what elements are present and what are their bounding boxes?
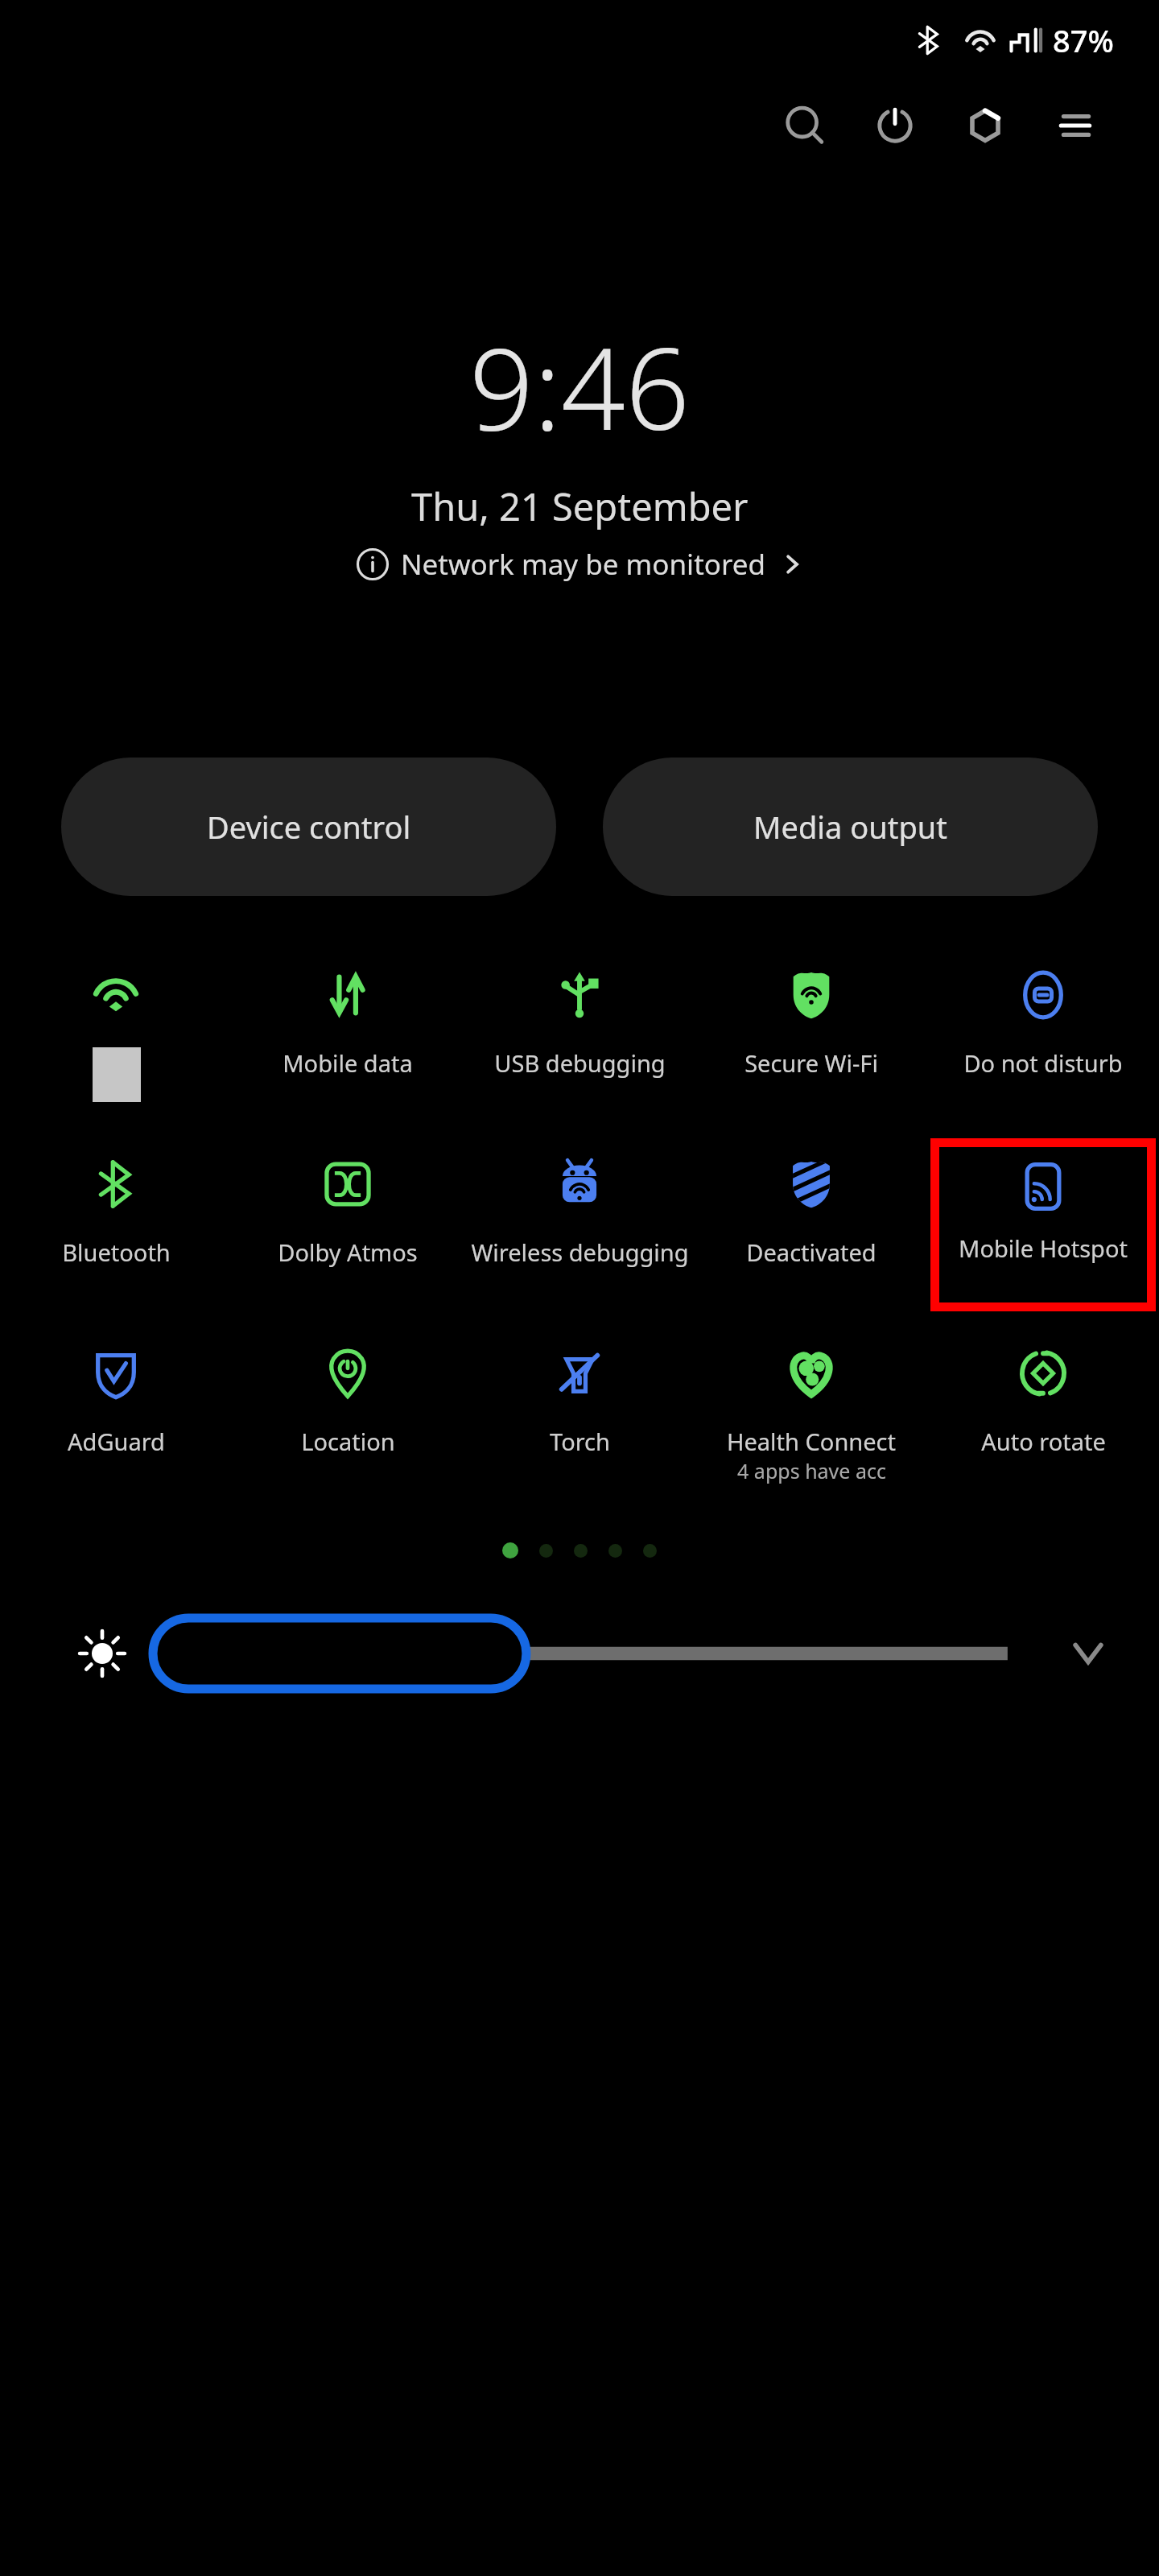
button[interactable]: Mobile Hotspot bbox=[939, 1147, 1147, 1302]
staticText: USB debugging bbox=[494, 1047, 666, 1079]
staticText: Health Connect bbox=[727, 1426, 896, 1457]
button[interactable]: AdGuard bbox=[0, 1327, 232, 1501]
staticText: Wireless debugging bbox=[471, 1236, 689, 1268]
button[interactable]: Settings bbox=[1030, 80, 1120, 171]
staticText: Dolby Atmos bbox=[278, 1236, 418, 1268]
button[interactable]: Bluetooth bbox=[0, 1138, 232, 1311]
button[interactable]: Location bbox=[232, 1327, 464, 1501]
button[interactable]: Rotate bbox=[940, 80, 1030, 171]
button[interactable]: Do not disturb bbox=[927, 949, 1159, 1122]
button[interactable]: Health Connect bbox=[695, 1327, 927, 1501]
button[interactable]: Dolby Atmos bbox=[232, 1138, 464, 1311]
button[interactable]: Power bbox=[850, 80, 940, 171]
button[interactable]: Wi-Fi bbox=[0, 949, 232, 1122]
button[interactable]: Brightness bbox=[151, 1616, 1048, 1690]
staticText: Media output bbox=[753, 806, 948, 848]
staticText: Device control bbox=[207, 806, 411, 848]
button[interactable]: Wireless debugging bbox=[464, 1138, 695, 1311]
button[interactable]: Media output bbox=[603, 758, 1098, 896]
staticText: Do not disturb bbox=[963, 1047, 1123, 1079]
button[interactable]: Expand brightness bbox=[1066, 1631, 1111, 1676]
staticText: Auto rotate bbox=[981, 1426, 1106, 1457]
staticText: AdGuard bbox=[68, 1426, 165, 1457]
button[interactable]: Device control bbox=[61, 758, 556, 896]
staticText: Bluetooth bbox=[62, 1236, 171, 1268]
staticText: 87% bbox=[1053, 19, 1114, 61]
staticText: Mobile data bbox=[283, 1047, 413, 1079]
button[interactable]: Mobile data bbox=[232, 949, 464, 1122]
button[interactable]: Secure Wi-Fi bbox=[695, 949, 927, 1122]
staticText: 9:46 bbox=[469, 309, 690, 463]
staticText: Torch bbox=[550, 1426, 610, 1457]
button[interactable]: Torch bbox=[464, 1327, 695, 1501]
staticText: Location bbox=[301, 1426, 395, 1457]
button[interactable]: Auto rotate bbox=[927, 1327, 1159, 1501]
button[interactable]: USB debugging bbox=[464, 949, 695, 1122]
staticText: 4 apps have acc bbox=[737, 1457, 886, 1484]
staticText: Network may be monitored bbox=[401, 545, 765, 584]
staticText: Deactivated bbox=[746, 1236, 876, 1268]
staticText: Thu, 21 September bbox=[411, 481, 749, 532]
button[interactable]: Deactivated bbox=[695, 1138, 927, 1311]
button[interactable]: Network may be monitored bbox=[0, 545, 1159, 584]
button[interactable]: Search bbox=[760, 80, 850, 171]
staticText: Secure Wi-Fi bbox=[744, 1047, 878, 1079]
staticText: Mobile Hotspot bbox=[959, 1232, 1128, 1264]
